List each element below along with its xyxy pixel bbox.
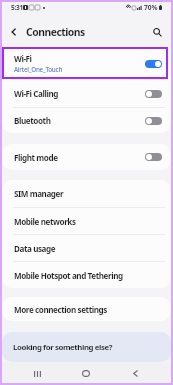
button[interactable]: Mobile networks	[2, 208, 171, 234]
button[interactable]: More connection settings	[2, 297, 171, 321]
staticText: Bluetooth	[14, 115, 51, 126]
button[interactable]: Turn on	[145, 117, 162, 125]
staticText: Airtel_One_Touch	[14, 65, 63, 74]
staticText: Connections	[26, 25, 85, 39]
button[interactable]: Recent apps	[23, 362, 51, 385]
staticText: Mobile Hotspot and Tethering	[14, 270, 123, 281]
button[interactable]: Bluetooth	[2, 108, 171, 133]
staticText: 70%	[144, 3, 158, 12]
button[interactable]: Looking for something else?	[2, 332, 171, 362]
staticText: Data usage	[14, 243, 56, 254]
button[interactable]: Mobile Hotspot and Tethering	[2, 262, 171, 288]
button[interactable]: Flight mode	[2, 144, 171, 170]
staticText: More connection settings	[14, 304, 107, 315]
button[interactable]: Turn off	[145, 60, 162, 68]
staticText: Flight mode	[14, 152, 58, 163]
staticText: SIM manager	[14, 188, 64, 199]
button[interactable]: Data usage	[2, 235, 171, 261]
staticText: Looking for something else?	[13, 342, 113, 353]
button[interactable]: Navigate up	[4, 22, 24, 42]
staticText: Wi-Fi Calling	[14, 88, 59, 99]
staticText: 5:31	[11, 3, 23, 12]
staticText: Mobile networks	[14, 216, 76, 227]
button[interactable]: Turn on	[145, 153, 162, 161]
button[interactable]: Back	[121, 362, 149, 385]
button[interactable]: Wi-Fi Calling	[2, 80, 171, 107]
button[interactable]: Wi-Fi	[2, 48, 171, 79]
button[interactable]: Home	[72, 362, 100, 385]
button[interactable]: SIM manager	[2, 180, 171, 207]
button[interactable]: Turn on	[145, 90, 162, 98]
staticText: Wi-Fi	[14, 53, 32, 64]
button[interactable]: Search	[147, 22, 167, 42]
